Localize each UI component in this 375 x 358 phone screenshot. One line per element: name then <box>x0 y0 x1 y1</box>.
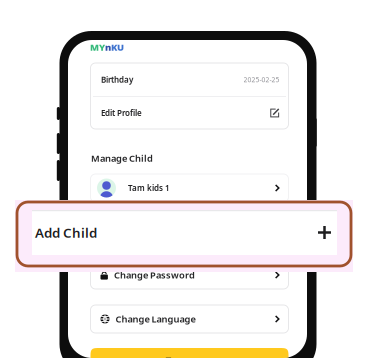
staticText: Edit Profile <box>101 108 142 118</box>
button[interactable]: Edit Profile <box>90 97 288 129</box>
staticText: Manage Child <box>91 152 153 164</box>
staticText: Change Language <box>115 313 195 325</box>
button[interactable]: Change Password <box>90 261 288 289</box>
button[interactable]: Logout <box>90 348 288 358</box>
button[interactable]: Change Language <box>90 305 288 333</box>
staticText: 2025-02-25 <box>243 75 279 84</box>
staticText: Birthday <box>101 74 133 85</box>
staticText: Add Child <box>35 224 97 241</box>
button[interactable]: Add Child <box>90 217 288 245</box>
button[interactable]: Tam kids 1 <box>90 174 288 202</box>
button[interactable]: Add Child <box>32 210 337 255</box>
staticText: KU <box>111 41 124 53</box>
button[interactable]: Birthday <box>90 63 288 96</box>
staticText: n <box>105 41 111 53</box>
staticText: Change Password <box>114 269 195 281</box>
staticText: Tam kids 1 <box>128 183 170 193</box>
staticText: MY <box>90 41 105 53</box>
